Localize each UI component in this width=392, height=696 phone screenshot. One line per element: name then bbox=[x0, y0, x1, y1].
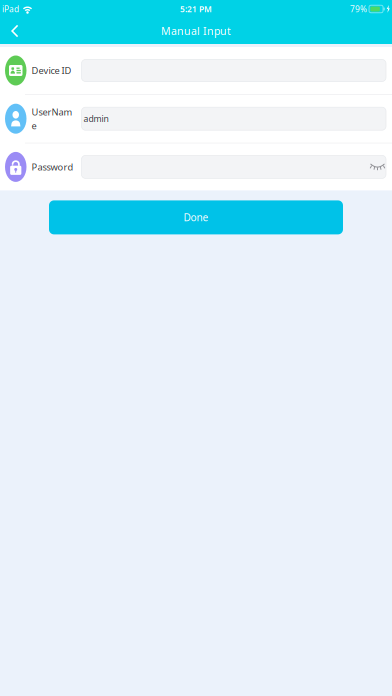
staticText: 5:21 PM bbox=[180, 3, 212, 15]
staticText: e bbox=[31, 119, 36, 132]
staticText: iPad bbox=[2, 3, 19, 15]
staticText: Done bbox=[183, 210, 208, 224]
staticText: 79% bbox=[350, 3, 367, 15]
staticText: Manual Input bbox=[161, 24, 231, 38]
staticText: Device ID bbox=[31, 64, 71, 77]
button[interactable]: Back bbox=[0, 18, 30, 44]
button[interactable]: Show password bbox=[370, 163, 386, 171]
staticText: Password bbox=[31, 160, 73, 173]
staticText: admin bbox=[83, 113, 108, 125]
button[interactable]: Done bbox=[49, 200, 343, 234]
staticText: UserNam bbox=[31, 105, 72, 118]
